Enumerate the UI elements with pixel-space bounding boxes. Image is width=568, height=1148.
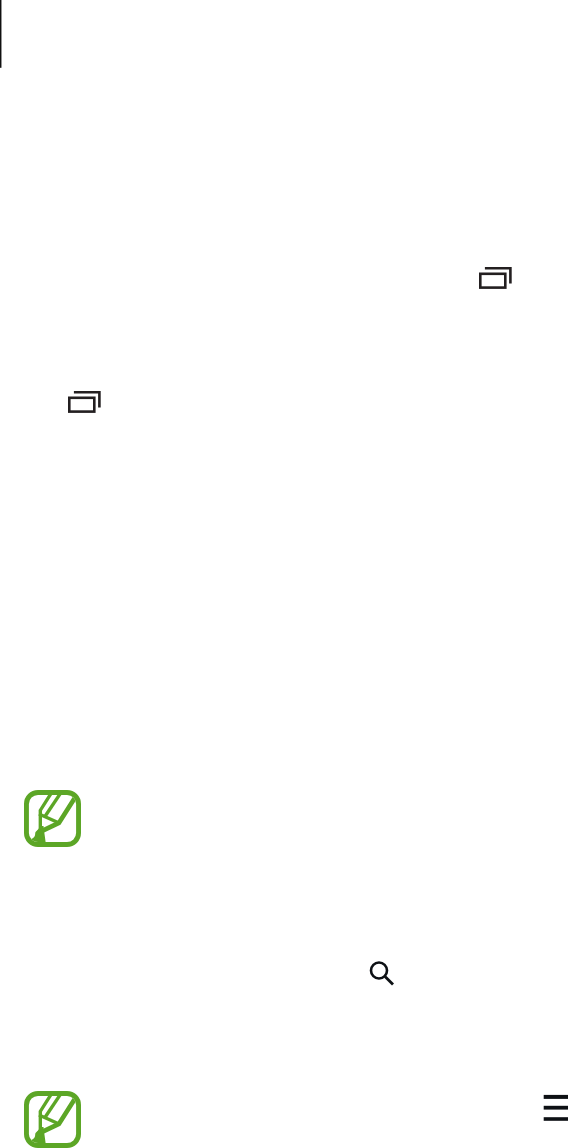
button[interactable]: Search [366, 957, 394, 985]
button[interactable]: Samsung Notes [24, 1091, 81, 1148]
button[interactable]: Open in new window [68, 391, 101, 413]
button[interactable]: Open in new window [479, 267, 512, 289]
button[interactable]: Samsung Notes [24, 790, 81, 847]
button[interactable]: Menu [543, 1092, 568, 1124]
